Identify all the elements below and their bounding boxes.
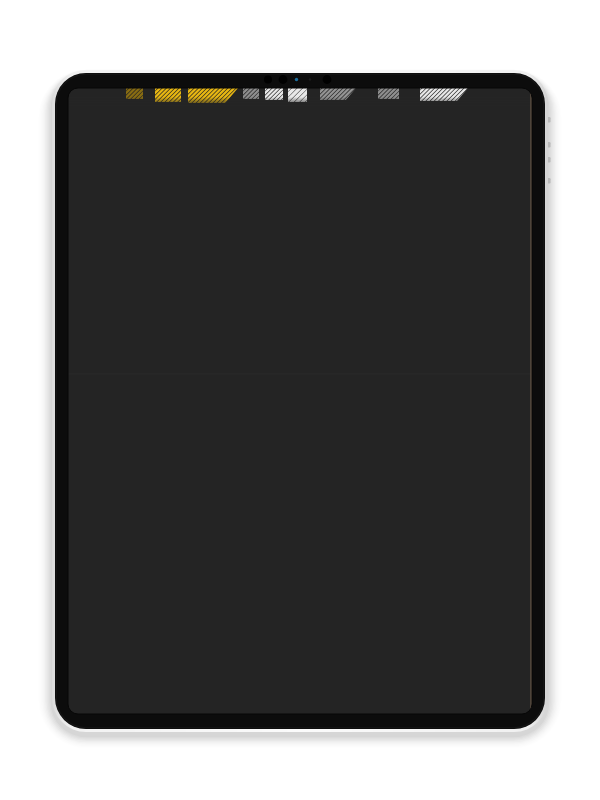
button[interactable]: Tablet device mockup (0, 0, 600, 800)
